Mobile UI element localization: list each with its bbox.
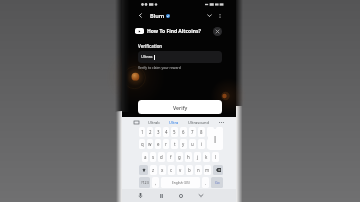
staticText: Go	[215, 180, 220, 185]
staticText: a	[144, 154, 147, 160]
button[interactable]: Close	[213, 27, 222, 36]
button[interactable]: Go	[211, 177, 223, 188]
button[interactable]: d	[158, 152, 165, 162]
staticText: z	[152, 167, 155, 173]
button[interactable]: More suggestions	[218, 119, 225, 126]
staticText: e	[157, 141, 160, 147]
button[interactable]: Home	[171, 189, 191, 202]
button[interactable]: 7	[189, 127, 196, 137]
button[interactable]: More options	[215, 11, 224, 20]
staticText: Verify to claim your reward	[138, 65, 181, 70]
button[interactable]: ?123	[139, 177, 150, 188]
button[interactable]: ,	[152, 177, 159, 188]
staticText: Ultras	[141, 54, 153, 60]
button[interactable]: Backspace	[213, 165, 223, 175]
button[interactable]: k	[203, 152, 210, 162]
button[interactable]: n	[195, 165, 202, 175]
staticText: f	[170, 154, 172, 160]
staticText: 4	[165, 129, 168, 135]
staticText: 8	[200, 129, 203, 135]
button[interactable]: Collapse	[205, 11, 214, 20]
staticText: s	[152, 154, 155, 160]
staticText: 7	[191, 129, 194, 135]
staticText: h	[187, 154, 190, 160]
button[interactable]: 1	[139, 127, 145, 137]
button[interactable]: Verify	[138, 100, 222, 114]
button[interactable]: 8	[198, 127, 205, 137]
button[interactable]: g	[176, 152, 183, 162]
button[interactable]: e	[155, 139, 161, 149]
button[interactable]: 2	[147, 127, 153, 137]
button[interactable]: English (US)	[161, 177, 200, 188]
staticText: l	[214, 134, 217, 145]
button[interactable]: .	[202, 177, 209, 188]
button[interactable]: Voice input	[130, 189, 151, 202]
staticText: 3	[157, 129, 160, 135]
button[interactable]: h	[185, 152, 192, 162]
staticText: English (US)	[172, 181, 190, 185]
button[interactable]: u	[189, 139, 196, 149]
button[interactable]: m	[204, 165, 211, 175]
button[interactable]: Back	[151, 189, 171, 202]
button[interactable]: Ultrab	[148, 120, 160, 125]
button[interactable]: v	[177, 165, 184, 175]
staticText: l	[215, 154, 217, 160]
button[interactable]: r	[163, 139, 169, 149]
staticText: ?123	[141, 180, 149, 185]
staticText: k	[205, 154, 208, 160]
staticText: Blum	[150, 12, 165, 20]
button[interactable]: Hide keyboard	[191, 189, 211, 202]
button[interactable]: f	[167, 152, 174, 162]
button[interactable]: Ultra	[169, 120, 179, 125]
staticText: i	[201, 141, 203, 147]
button[interactable]: q	[139, 139, 145, 149]
button[interactable]: z	[150, 165, 157, 175]
staticText: 1	[141, 129, 144, 135]
button[interactable]: a	[142, 152, 148, 162]
staticText: t	[174, 141, 176, 147]
button[interactable]: t	[171, 139, 178, 149]
button[interactable]: 3	[155, 127, 161, 137]
staticText: b	[188, 167, 191, 173]
button[interactable]: Shift	[139, 165, 148, 175]
staticText: w	[148, 141, 152, 147]
button[interactable]: Ultras	[138, 51, 222, 63]
button[interactable]: 4	[163, 127, 169, 137]
button[interactable]: s	[150, 152, 156, 162]
staticText: g	[178, 154, 181, 160]
button[interactable]: Keyboard settings	[133, 119, 140, 126]
staticText: j	[197, 154, 199, 160]
staticText: v	[179, 167, 182, 173]
button[interactable]: Back	[136, 11, 145, 20]
staticText: Verify	[173, 104, 188, 111]
button[interactable]: j	[194, 152, 201, 162]
button[interactable]: w	[147, 139, 153, 149]
button[interactable]: b	[186, 165, 193, 175]
staticText: .	[205, 180, 207, 186]
button[interactable]: Ultrasound	[188, 120, 209, 125]
button[interactable]: l	[212, 152, 219, 162]
staticText: u	[191, 141, 194, 147]
staticText: m	[205, 167, 210, 173]
staticText: ,	[155, 180, 157, 186]
button[interactable]: 6	[180, 127, 187, 137]
button[interactable]: i	[198, 139, 205, 149]
button[interactable]: c	[168, 165, 175, 175]
button[interactable]: y	[180, 139, 187, 149]
button[interactable]: x	[159, 165, 166, 175]
staticText: r	[165, 141, 167, 147]
staticText: 5	[173, 129, 176, 135]
staticText: y	[182, 141, 185, 147]
staticText: d	[160, 154, 163, 160]
button[interactable]: 5	[171, 127, 178, 137]
staticText: c	[170, 167, 173, 173]
staticText: How To Find Altcoins?	[147, 28, 201, 35]
